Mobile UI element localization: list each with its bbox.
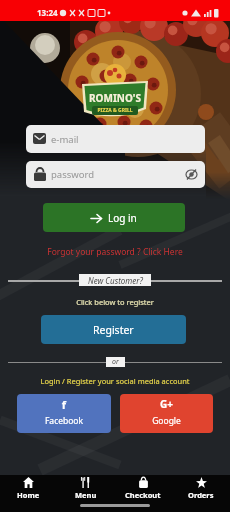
staticText: Menu [75,490,97,500]
staticText: Click below to register [0,297,230,307]
staticText: Log in [108,211,137,225]
staticText: Home [17,490,40,500]
button[interactable]: Register [41,315,186,344]
button[interactable]: password [26,161,205,188]
staticText: G+ [120,397,213,411]
button[interactable]: Forgot your password ? Click Here [0,246,230,258]
button[interactable]: Checkout [114,475,172,512]
staticText: Login / Register your social media accou… [0,376,230,386]
staticText: New Customer? [88,275,143,286]
staticText: ROMINO'S [78,91,152,105]
staticText: password [51,168,95,181]
button[interactable]: Log in [43,203,185,232]
button[interactable]: e-mail [26,125,205,153]
staticText: Register [93,323,134,337]
staticText: e-mail [51,133,79,146]
button[interactable]: Orders [172,475,230,512]
button[interactable]: f [17,394,111,433]
staticText: 13:24 [37,7,58,18]
staticText: Checkout [125,490,161,500]
button[interactable]: Home [0,475,57,512]
staticText: or [112,357,119,367]
button[interactable]: G+ [120,394,213,433]
button[interactable]: Menu [57,475,114,512]
staticText: Orders [188,490,214,500]
staticText: PIZZA & GRILL [78,107,152,114]
staticText: Google [120,415,213,427]
staticText: Facebook [17,415,111,427]
staticText: f [17,397,111,412]
